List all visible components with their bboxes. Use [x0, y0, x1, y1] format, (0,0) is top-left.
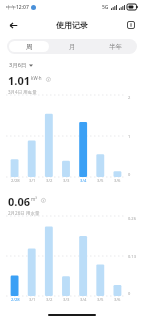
- staticText: 2/28: [11, 297, 20, 303]
- staticText: m³: [31, 196, 37, 202]
- staticText: 0: [128, 172, 131, 177]
- button[interactable]: 周: [9, 41, 49, 52]
- button[interactable]: 月: [53, 41, 92, 52]
- staticText: 3/4: [80, 297, 87, 303]
- staticText: 中午12:07: [6, 4, 29, 11]
- staticText: 3/1: [29, 297, 36, 303]
- staticText: kW·h: [31, 75, 42, 81]
- staticText: 2/28: [11, 178, 20, 184]
- staticText: 0: [128, 291, 131, 296]
- button[interactable]: 说明: [40, 197, 46, 203]
- staticText: 2: [128, 95, 131, 100]
- staticText: 3/3: [63, 178, 70, 184]
- staticText: 月: [69, 43, 76, 51]
- staticText: 0.06: [8, 194, 30, 209]
- button[interactable]: 说明: [45, 76, 51, 82]
- button[interactable]: 半年: [96, 41, 135, 52]
- button[interactable]: 日历: [123, 17, 139, 33]
- staticText: 3/6: [114, 178, 121, 184]
- staticText: 1: [128, 134, 131, 139]
- staticText: 3/5: [97, 297, 104, 303]
- staticText: 3月6日: [9, 61, 27, 69]
- staticText: 3月4日 用电量: [8, 89, 37, 95]
- staticText: 使用记录: [56, 20, 88, 30]
- staticText: 3/3: [63, 297, 70, 303]
- button[interactable]: 3月6日: [8, 60, 34, 70]
- staticText: 3/2: [46, 178, 53, 184]
- staticText: 0.26: [128, 216, 136, 221]
- staticText: 周: [26, 43, 33, 51]
- staticText: 1.01: [8, 73, 30, 88]
- staticText: 3/4: [80, 178, 87, 184]
- staticText: 3/2: [46, 297, 53, 303]
- staticText: 5G: [102, 4, 109, 11]
- staticText: 3/1: [29, 178, 36, 184]
- staticText: 半年: [109, 43, 122, 51]
- staticText: 2月26日 用水量: [8, 210, 40, 216]
- button[interactable]: 返回: [4, 16, 22, 34]
- staticText: 0.13: [128, 254, 136, 259]
- staticText: 3/6: [114, 297, 121, 303]
- staticText: 3/5: [97, 178, 104, 184]
